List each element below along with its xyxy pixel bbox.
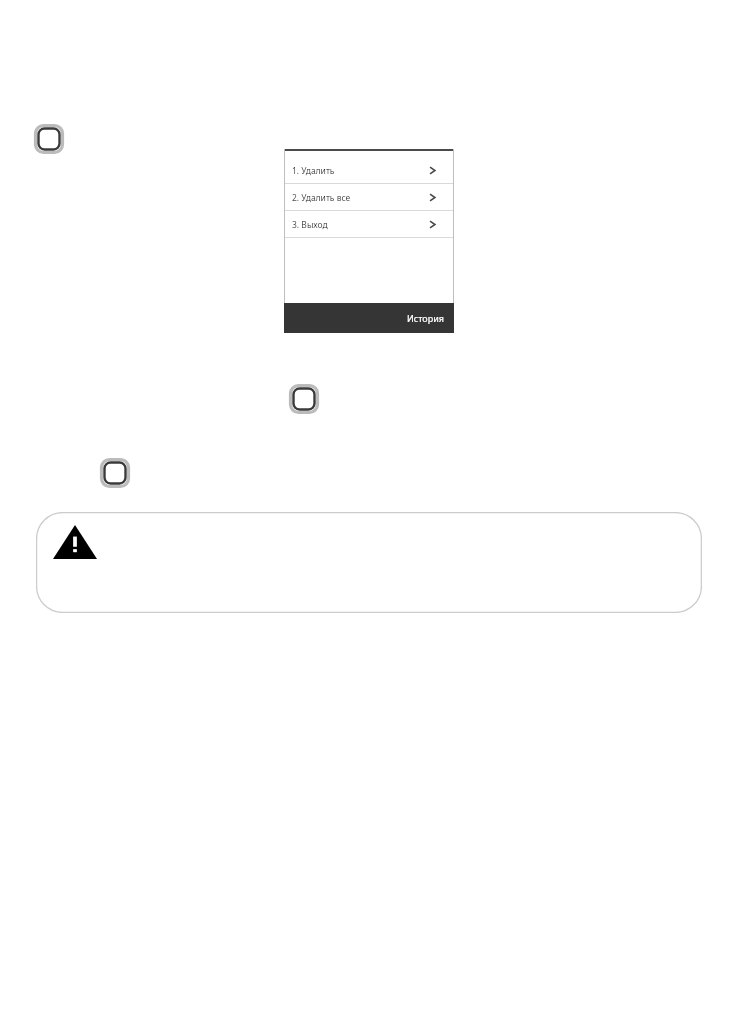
button[interactable]: 1. Удалить [284,157,454,184]
button[interactable]: 2. Удалить все [284,184,454,211]
button[interactable]: Button [100,458,130,488]
staticText: 1. Удалить [292,165,335,177]
button[interactable]: История [284,303,454,333]
staticText: История [407,312,444,324]
button[interactable]: Button [289,384,319,414]
button[interactable]: 3. Выход [284,211,454,238]
button[interactable]: Button [34,124,64,154]
staticText: 2. Удалить все [292,192,351,204]
staticText: 3. Выход [292,219,328,231]
